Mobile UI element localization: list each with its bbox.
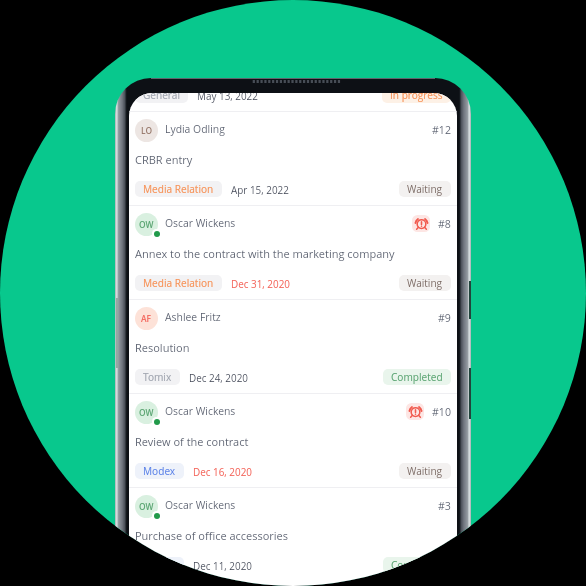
staticText: Apr 15, 2022 — [231, 183, 289, 196]
staticText: Oscar Wickens — [165, 216, 236, 230]
button[interactable]: OW — [129, 487, 457, 563]
staticText: Tomix — [143, 370, 172, 384]
staticText: May 13, 2022 — [197, 93, 258, 102]
staticText: Oscar Wickens — [165, 498, 236, 512]
button[interactable]: OW — [129, 205, 457, 299]
staticText: Waiting — [407, 182, 443, 196]
staticText: OW — [139, 219, 154, 230]
staticText: #9 — [438, 311, 451, 325]
staticText: In progress — [390, 93, 443, 102]
other: Overdue reminder — [412, 215, 430, 232]
button[interactable]: AF — [129, 299, 457, 393]
other: Overdue reminder — [406, 403, 424, 420]
button[interactable]: OW — [129, 393, 457, 487]
staticText: Lydia Odling — [165, 122, 225, 136]
staticText: #8 — [438, 217, 451, 231]
staticText: Dec 16, 2020 — [193, 465, 252, 478]
staticText: Waiting — [407, 276, 443, 290]
staticText: CRBR entry — [135, 152, 193, 167]
staticText: Dec 11, 2020 — [193, 559, 252, 572]
staticText: Annex to the contract with the marketing… — [135, 246, 395, 261]
staticText: General — [143, 93, 180, 102]
staticText: LO — [141, 125, 152, 136]
staticText: Media Relation — [143, 182, 214, 196]
staticText: Review of the contract — [135, 434, 249, 449]
staticText: #12 — [432, 123, 451, 137]
staticText: #10 — [432, 405, 451, 419]
button[interactable]: General — [129, 93, 457, 111]
staticText: OW — [139, 407, 154, 418]
button[interactable]: LO — [129, 111, 457, 205]
staticText: Dec 24, 2020 — [189, 371, 248, 384]
staticText: Dec 31, 2020 — [231, 277, 290, 290]
staticText: OW — [139, 501, 154, 512]
staticText: Media Relation — [143, 276, 214, 290]
staticText: Waiting — [407, 464, 443, 478]
staticText: Modex — [143, 558, 176, 572]
staticText: Purchase of office accessories — [135, 528, 289, 543]
staticText: Oscar Wickens — [165, 404, 236, 418]
staticText: AF — [141, 313, 152, 324]
staticText: Completed — [391, 370, 443, 384]
staticText: #3 — [438, 499, 451, 513]
staticText: Ashlee Fritz — [165, 310, 221, 324]
staticText: Completed — [391, 558, 443, 572]
staticText: Modex — [143, 464, 176, 478]
staticText: Resolution — [135, 340, 190, 355]
